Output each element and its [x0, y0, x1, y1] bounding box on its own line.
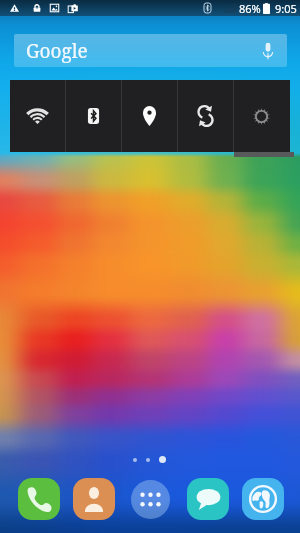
button[interactable]: Google [14, 34, 287, 67]
staticText: 9:05 [275, 1, 297, 16]
button[interactable]: Phone [18, 478, 60, 520]
button[interactable]: Sync [178, 80, 233, 152]
button[interactable]: Messages [187, 478, 229, 520]
button[interactable]: Brightness [234, 80, 289, 152]
button[interactable]: Location [122, 80, 177, 152]
staticText: 86% [239, 1, 261, 16]
button[interactable]: Bluetooth [66, 80, 121, 152]
other: Voice search [261, 42, 275, 60]
button[interactable]: Apps [131, 480, 170, 519]
button[interactable]: Wi-Fi [10, 80, 65, 152]
button[interactable]: Browser [242, 478, 284, 520]
button[interactable]: Contacts [73, 478, 115, 520]
staticText: Google [26, 38, 88, 64]
